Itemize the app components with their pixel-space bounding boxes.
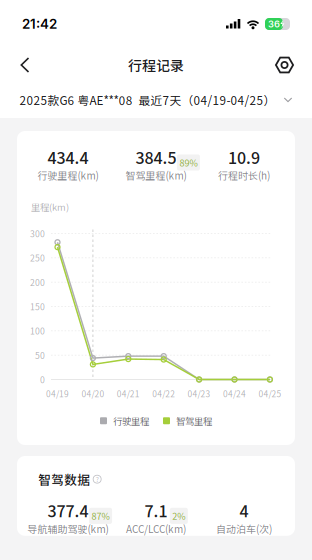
staticText: 100 [30,325,45,337]
staticText: 21:42 [22,16,57,32]
staticText: 04/20 [81,387,104,400]
staticText: 智驾里程(km) [125,168,186,182]
staticText: ? [96,474,99,484]
staticText: 自动泊车(次) [216,521,272,536]
staticText: 384.5 [135,145,176,169]
staticText: 04/22 [152,387,175,400]
staticText: 377.4 [48,499,89,522]
staticText: 7.1 [144,499,167,522]
button[interactable]: 2025款G6 粤AE***08 最近7天（04/19-04/25） [0,84,312,116]
staticText: 10.9 [228,145,260,169]
staticText: 04/25 [258,387,281,400]
staticText: 04/24 [223,387,246,400]
button[interactable]: 返回 [12,48,38,82]
staticText: 2% [172,509,185,522]
staticText: 行驶里程 [113,414,149,427]
staticText: 行驶里程(km) [38,168,99,182]
staticText: 36 [268,18,280,30]
staticText: ACC/LCC(km) [126,521,186,536]
button[interactable]: 设置 [269,47,300,82]
staticText: 2025款G6 粤AE***08 最近7天（04/19-04/25） [19,91,275,108]
staticText: 4 [239,499,248,522]
staticText: 行程时长(h) [218,168,270,182]
staticText: 04/19 [46,387,69,400]
staticText: 智驾数据 [38,470,90,488]
staticText: 150 [30,300,45,313]
staticText: 250 [30,252,45,264]
staticText: 50 [35,349,45,361]
staticText: 300 [30,227,45,240]
staticText: 行程记录 [128,55,184,75]
staticText: 0 [40,373,45,386]
staticText: 里程(km) [31,200,69,213]
staticText: 04/21 [117,387,140,400]
staticText: 87% [91,509,109,522]
staticText: 200 [30,276,45,288]
staticText: 智驾里程 [176,414,212,427]
staticText: 04/23 [188,387,211,400]
staticText: 434.4 [48,145,89,169]
staticText: 导航辅助驾驶(km) [28,521,109,536]
staticText: 89% [179,156,197,169]
